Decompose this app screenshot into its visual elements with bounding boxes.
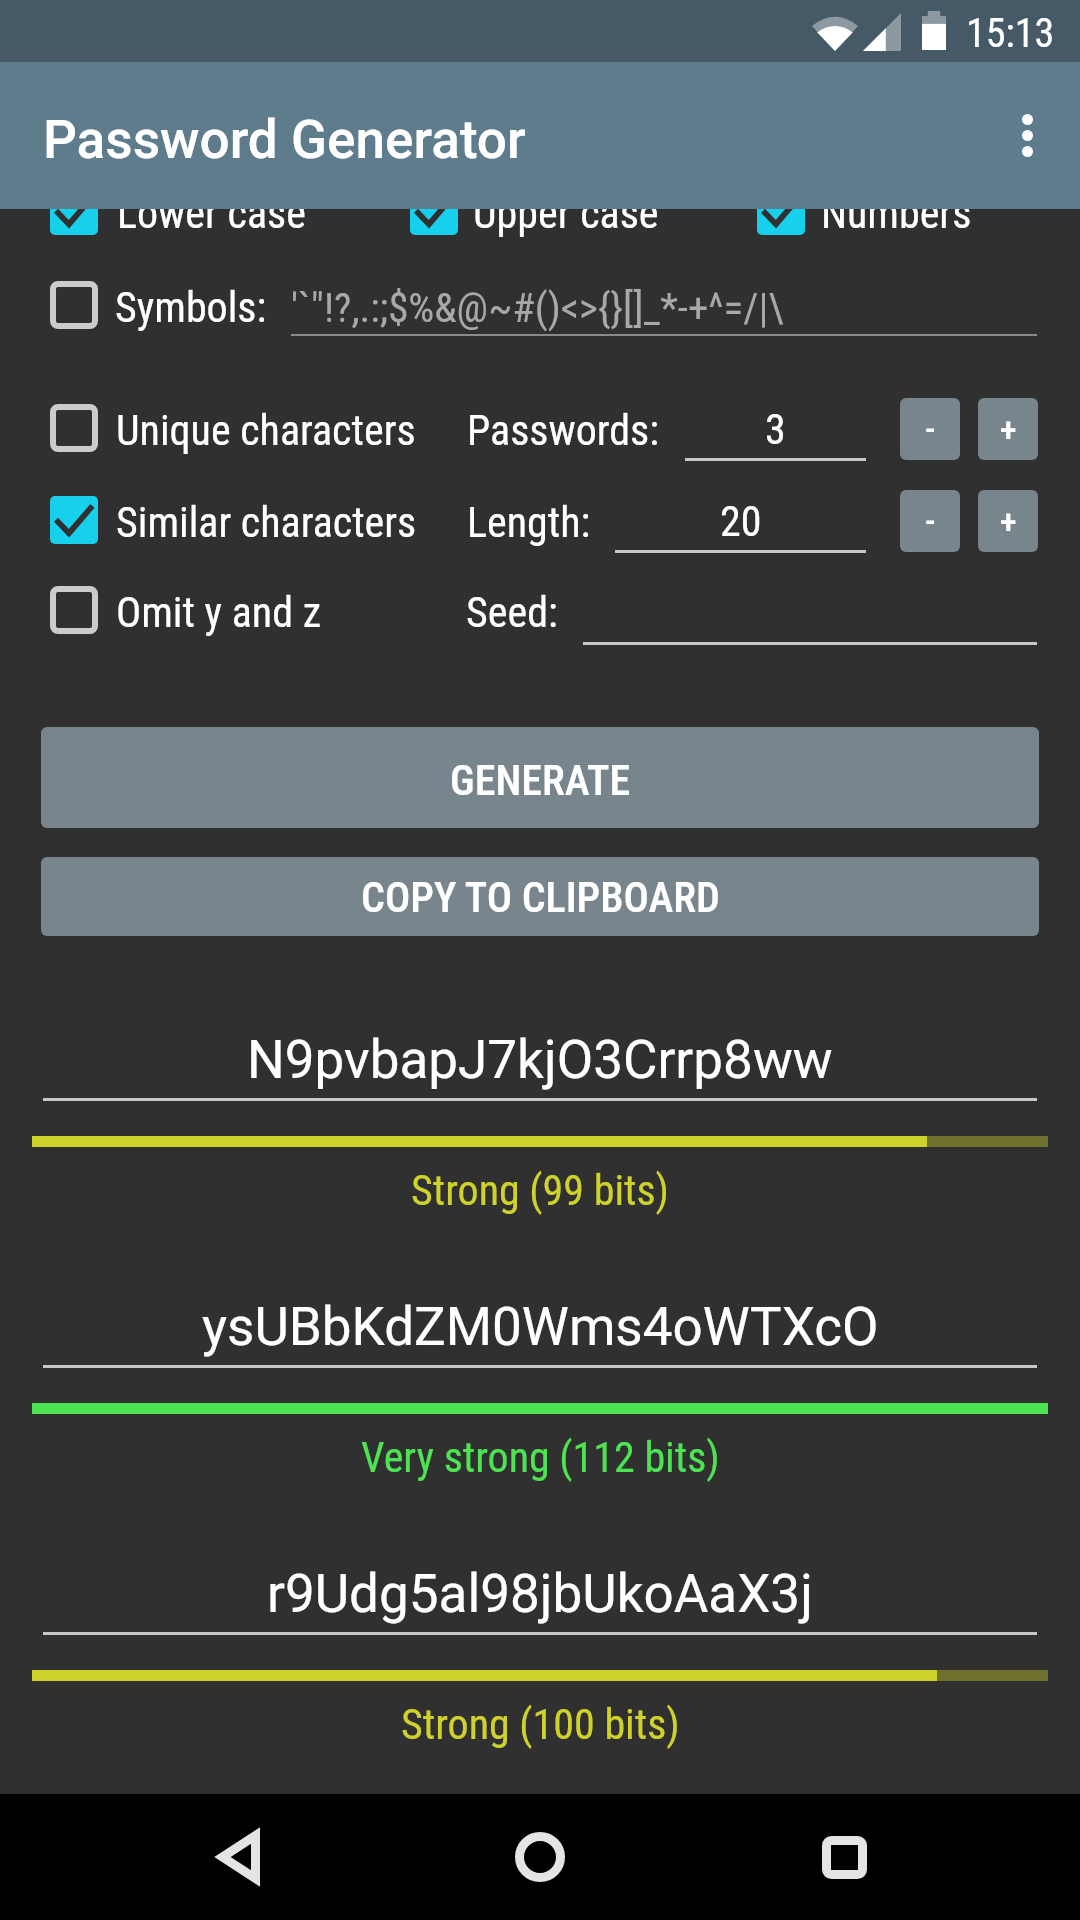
staticText: Upper case: [473, 189, 659, 237]
staticText: r9Udg5al98jbUkoAaX3j: [267, 1563, 813, 1625]
staticText: 3: [765, 405, 786, 454]
button[interactable]: More options: [970, 62, 1080, 209]
button[interactable]: Seed: [583, 585, 1037, 645]
staticText: Unique characters: [116, 406, 416, 454]
button[interactable]: Increase passwords: [978, 398, 1038, 460]
staticText: '`"!?,.:;$%&@~#()<>{}[]_*-+^=/|\: [291, 284, 784, 332]
staticText: N9pvbapJ7kjO3Crrp8ww: [247, 1029, 833, 1091]
staticText: Password Generator: [43, 109, 526, 171]
staticText: Omit y and z: [116, 588, 322, 636]
button[interactable]: Decrease passwords: [900, 398, 960, 460]
staticText: +: [1000, 409, 1017, 449]
button[interactable]: Upper case: [410, 187, 685, 235]
button[interactable]: Number of passwords: [685, 398, 866, 461]
button[interactable]: Unique characters: [50, 404, 412, 452]
staticText: GENERATE: [450, 756, 631, 805]
staticText: Length:: [467, 498, 591, 547]
staticText: 20: [720, 497, 762, 546]
staticText: Numbers: [821, 189, 972, 237]
button[interactable]: COPY TO CLIPBOARD: [41, 857, 1039, 936]
button[interactable]: Lower case: [50, 187, 340, 235]
button[interactable]: '`"!?,.:;$%&@~#()<>{}[]_*-+^=/|\: [291, 277, 1037, 337]
staticText: ysUBbKdZM0Wms4oWTXcO: [202, 1296, 879, 1358]
button[interactable]: Similar characters: [50, 496, 413, 544]
staticText: -: [925, 501, 936, 541]
button[interactable]: Symbols:: [50, 281, 276, 329]
button[interactable]: Home: [450, 1794, 630, 1920]
button[interactable]: Increase length: [978, 490, 1038, 552]
button[interactable]: GENERATE: [41, 727, 1039, 828]
button[interactable]: Decrease length: [900, 490, 960, 552]
staticText: -: [925, 409, 936, 449]
button[interactable]: Back: [149, 1794, 329, 1920]
staticText: COPY TO CLIPBOARD: [361, 873, 720, 922]
button[interactable]: Recent apps: [754, 1794, 934, 1920]
staticText: Passwords:: [467, 406, 660, 455]
staticText: +: [1000, 501, 1017, 541]
button[interactable]: Password length: [615, 490, 866, 553]
staticText: Lower case: [117, 189, 306, 237]
staticText: 15:13: [966, 10, 1055, 57]
staticText: Strong (100 bits): [401, 1700, 680, 1749]
staticText: Very strong (112 bits): [361, 1433, 720, 1482]
staticText: Symbols:: [115, 283, 267, 331]
staticText: Similar characters: [116, 498, 417, 546]
staticText: Seed:: [466, 588, 558, 637]
button[interactable]: Omit y and z: [50, 586, 319, 634]
button[interactable]: Numbers: [757, 187, 979, 235]
staticText: Strong (99 bits): [411, 1166, 669, 1215]
